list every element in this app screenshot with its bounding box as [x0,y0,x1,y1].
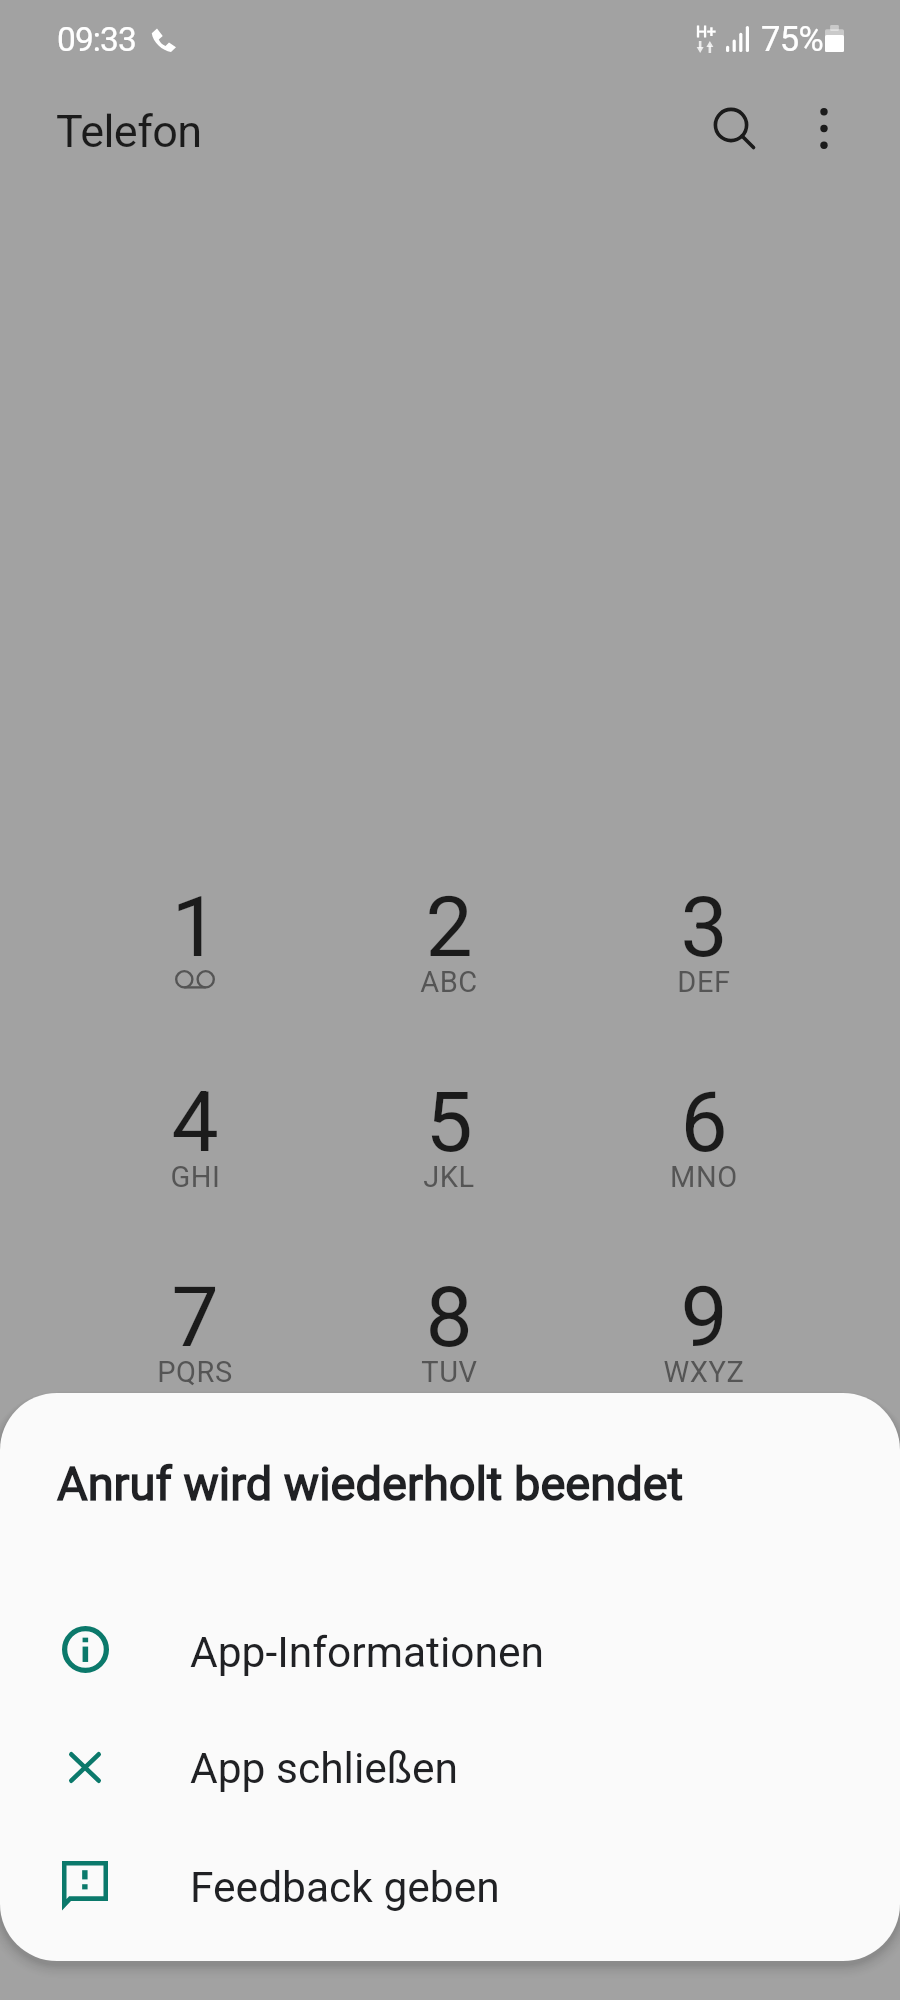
staticText: PQRS [157,1355,233,1389]
button[interactable]: 4 [95,1073,295,1233]
staticText: App schließen [190,1744,459,1794]
staticText: 3 [680,878,728,976]
button[interactable]: 9 [604,1268,804,1428]
staticText: GHI [170,1160,221,1194]
staticText: Anruf wird wiederholt beendet [57,1456,684,1511]
staticText: 7 [171,1268,219,1366]
button[interactable]: Feedback geben [0,1826,900,1942]
button[interactable]: App schließen [0,1709,900,1825]
staticText: Telefon [56,105,202,158]
staticText: 75% [761,19,824,59]
staticText: MNO [670,1160,738,1194]
button[interactable]: 7 [95,1268,295,1428]
button[interactable]: 5 [349,1073,549,1233]
button[interactable]: More options [786,90,862,166]
button[interactable]: 3 [604,878,804,1038]
staticText: Feedback geben [190,1863,500,1913]
staticText: ABC [420,965,478,999]
staticText: 8 [425,1268,473,1366]
staticText: 2 [425,878,473,976]
staticText: 6 [680,1073,728,1171]
button[interactable]: 6 [604,1073,804,1233]
staticText: JKL [423,1160,475,1194]
staticText: 09:33 [57,20,136,59]
button[interactable]: 1 [95,878,295,1038]
staticText: 9 [680,1268,728,1366]
staticText: 5 [425,1073,473,1171]
button[interactable]: 8 [349,1268,549,1428]
staticText: WXYZ [663,1355,745,1389]
button[interactable]: 2 [349,878,549,1038]
staticText: DEF [677,965,731,999]
staticText: 4 [171,1073,219,1171]
staticText: H+ [696,23,716,41]
staticText: App-Informationen [190,1628,544,1678]
button[interactable]: Search [702,96,779,173]
staticText: 1 [171,878,219,976]
staticText: TUV [421,1355,478,1389]
button[interactable]: App-Informationen [0,1591,900,1707]
